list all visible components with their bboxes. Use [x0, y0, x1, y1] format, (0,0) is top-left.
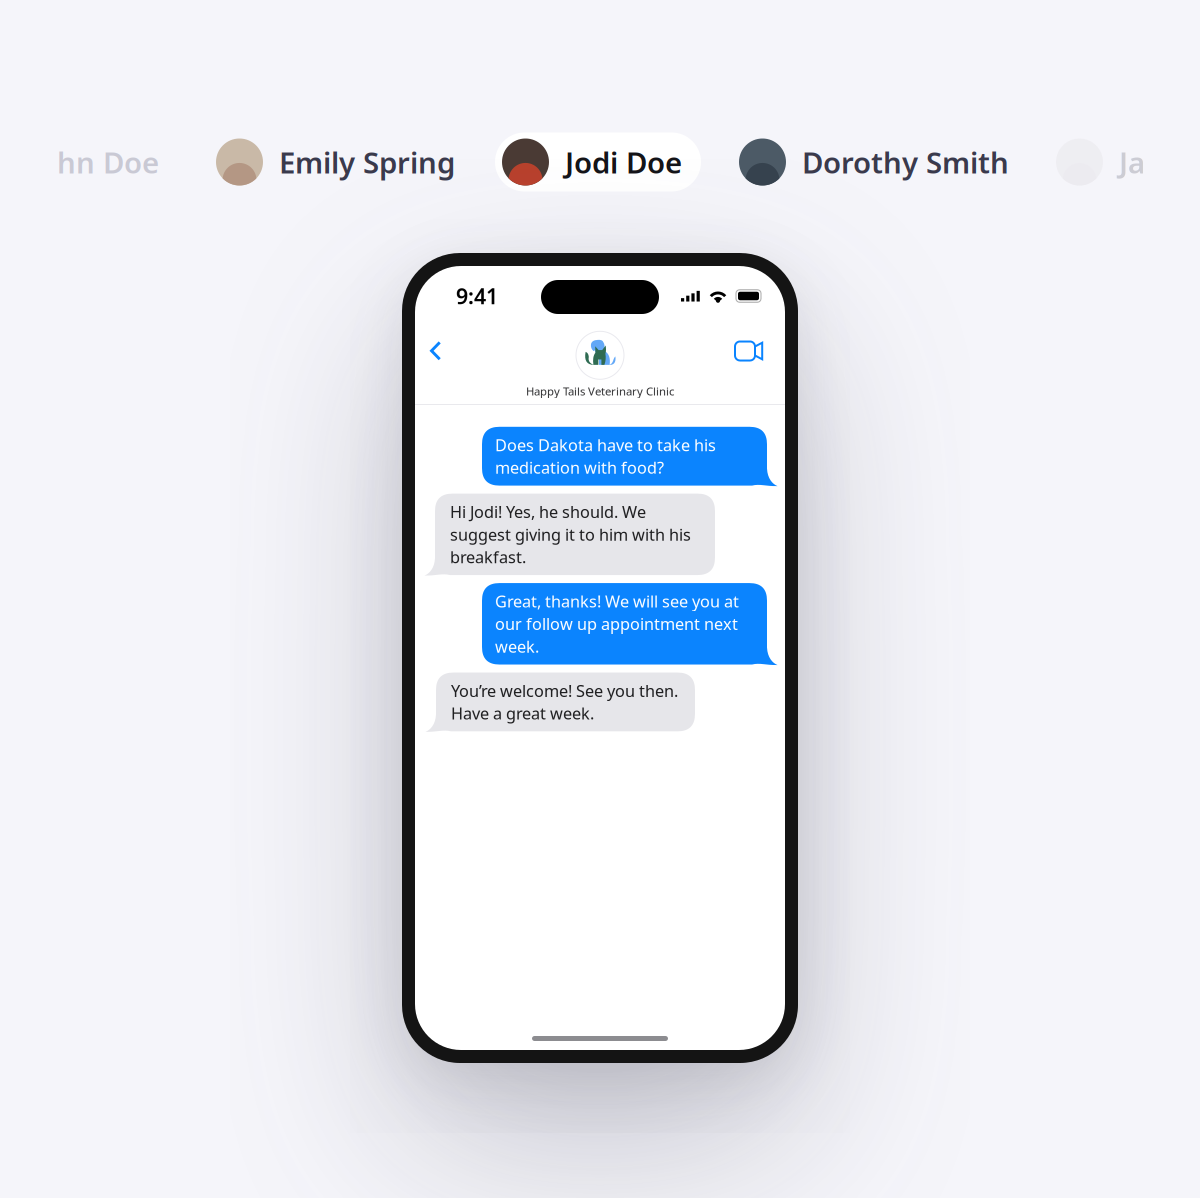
- staticText: Happy Tails Veterinary Clinic: [526, 383, 674, 399]
- button[interactable]: Dorothy Smith: [739, 138, 1009, 185]
- staticText: Jodi Doe: [565, 142, 682, 181]
- button[interactable]: Back: [427, 329, 458, 373]
- staticText: Dorothy Smith: [802, 142, 1009, 181]
- button[interactable]: Emily Spring: [216, 138, 455, 185]
- staticText: You’re welcome! See you then. Have a gre…: [451, 679, 678, 724]
- button[interactable]: Video call: [725, 329, 773, 372]
- staticText: Does Dakota have to take his medication …: [495, 434, 716, 479]
- staticText: hn Doe: [57, 142, 159, 181]
- staticText: Hi Jodi! Yes, he should. We suggest givi…: [450, 501, 691, 568]
- staticText: Emily Spring: [279, 142, 455, 181]
- button[interactable]: Jodi Doe: [495, 132, 701, 191]
- staticText: Ja: [1119, 142, 1145, 181]
- staticText: Great, thanks! We will see you at our fo…: [495, 590, 739, 658]
- button[interactable]: Ja: [1056, 138, 1145, 185]
- staticText: 9:41: [456, 282, 498, 310]
